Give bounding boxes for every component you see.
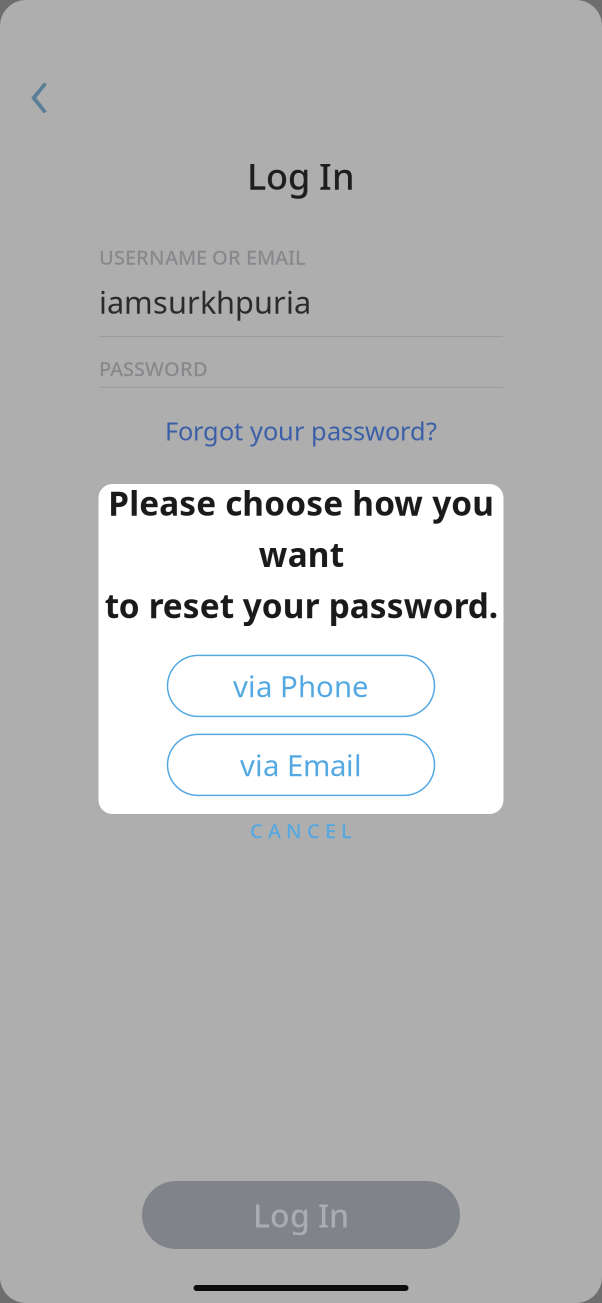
button[interactable]: C A N C E L [234,813,368,847]
button[interactable]: Forgot your password? [153,406,449,455]
staticText: Forgot your password? [165,414,437,447]
staticText: Log In [247,152,355,200]
staticText: C A N C E L [250,817,352,844]
staticText: ‹ [29,38,49,140]
staticText: USERNAME OR EMAIL [99,244,306,270]
staticText: via Phone [233,666,369,705]
staticText: PASSWORD [99,355,208,382]
button[interactable]: Back [8,58,70,120]
button[interactable]: via Email [167,734,434,795]
staticText: Please choose how you want to reset your… [104,481,497,627]
button[interactable]: Log In [142,1181,460,1249]
staticText: Log In [253,1194,349,1236]
staticText: via Email [240,745,362,784]
staticText: iamsurkhpuria [99,281,311,322]
button[interactable]: via Phone [167,655,434,716]
